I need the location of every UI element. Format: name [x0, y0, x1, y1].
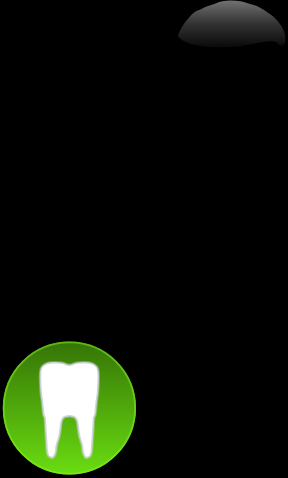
button[interactable]: Dental app splash screen — [0, 0, 288, 478]
